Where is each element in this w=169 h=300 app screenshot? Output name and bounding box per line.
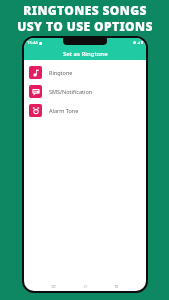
button[interactable]: Ringtone: [24, 63, 146, 82]
staticText: SMS/Notification: [49, 88, 93, 95]
staticText: Ringtone: [49, 69, 73, 76]
staticText: 15:44: [27, 40, 38, 46]
staticText: RINGTONES SONGS: [23, 2, 147, 18]
button[interactable]: Recent apps: [51, 284, 56, 289]
button[interactable]: Home: [83, 284, 88, 289]
button[interactable]: Back: [114, 284, 119, 289]
button[interactable]: SMS/Notification: [24, 82, 146, 101]
staticText: Alarm Tone: [49, 107, 79, 114]
button[interactable]: Alarm Tone: [24, 101, 146, 120]
staticText: Set as Ringtone: [63, 50, 108, 58]
staticText: USY TO USE OPTIONS: [17, 18, 153, 34]
